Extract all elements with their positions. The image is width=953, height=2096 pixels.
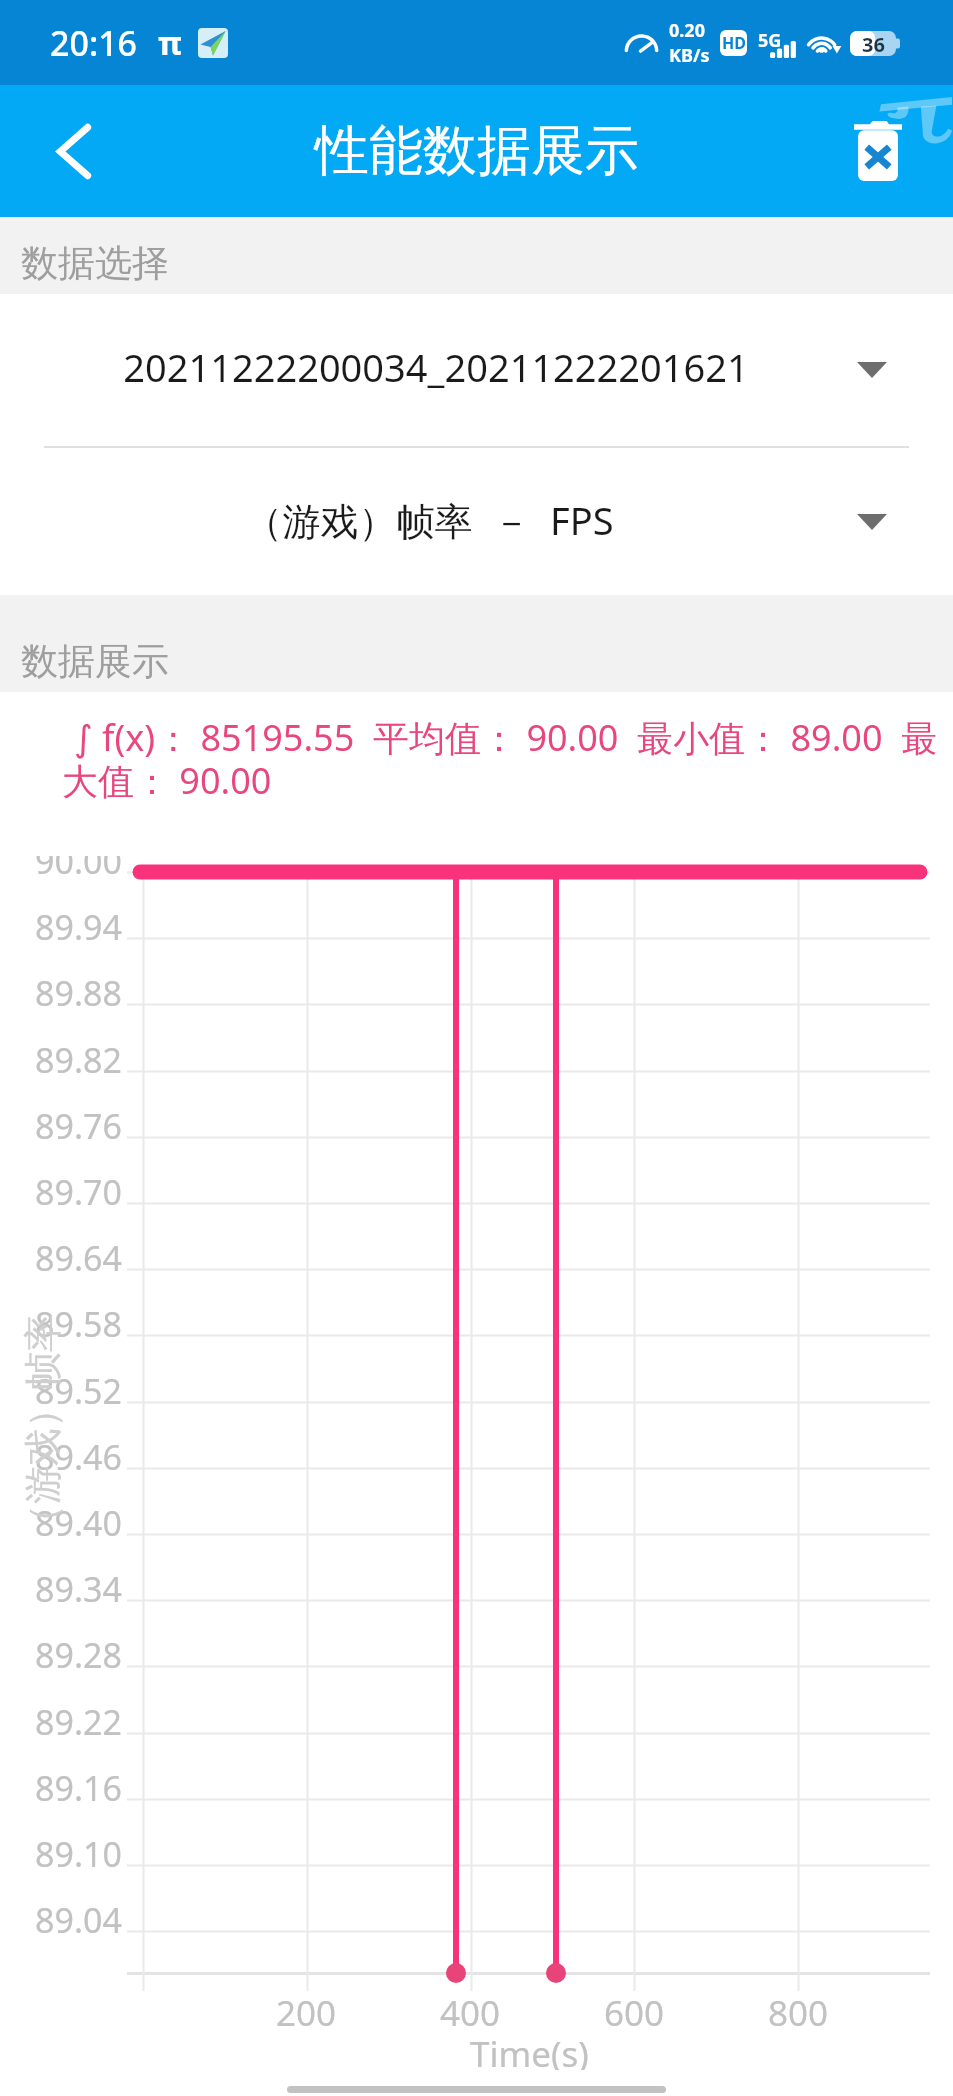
staticText: （游戏）帧率 — [19, 1314, 67, 1542]
staticText: ∫ f(x)： 85195.55 平均值： 90.00 最小值： 89.00 最 — [74, 713, 938, 762]
staticText: 90.00 — [35, 838, 122, 884]
staticText: 89.82 — [35, 1037, 122, 1083]
staticText: KB/s — [669, 43, 710, 68]
staticText: Time(s) — [470, 2030, 589, 2070]
staticText: 89.10 — [35, 1831, 122, 1877]
button[interactable]: 20211222200034_20211222201621 — [0, 294, 953, 446]
staticText: 89.58 — [35, 1301, 122, 1347]
staticText: 20:16 — [50, 20, 138, 66]
staticText: 大值： 90.00 — [62, 756, 272, 805]
staticText: 89.34 — [35, 1566, 122, 1612]
staticText: 89.46 — [35, 1434, 122, 1480]
staticText: 数据选择 — [21, 240, 169, 287]
staticText: 89.04 — [35, 1897, 122, 1943]
button[interactable]: Delete data — [818, 85, 938, 217]
staticText: π — [158, 21, 182, 65]
staticText: 89.64 — [35, 1235, 122, 1281]
staticText: 89.94 — [35, 904, 122, 950]
staticText: 89.40 — [35, 1500, 122, 1546]
button[interactable]: Back — [0, 85, 148, 217]
staticText: 89.28 — [35, 1632, 122, 1678]
staticText: 400 — [440, 1989, 501, 2029]
staticText: HD — [722, 32, 746, 54]
staticText: 89.22 — [35, 1699, 122, 1745]
staticText: 89.16 — [35, 1765, 122, 1811]
staticText: 89.88 — [35, 970, 122, 1016]
staticText: 89.52 — [35, 1368, 122, 1414]
staticText: 200 — [276, 1989, 337, 2029]
staticText: 性能数据展示 — [315, 117, 639, 185]
staticText: 89.70 — [35, 1169, 122, 1215]
staticText: 数据展示 — [21, 638, 169, 685]
staticText: 600 — [604, 1989, 665, 2029]
staticText: （游戏）帧率 － FPS — [244, 494, 614, 546]
staticText: 5G — [758, 28, 782, 53]
staticText: 800 — [768, 1989, 829, 2029]
staticText: 20211222200034_20211222201621 — [123, 341, 749, 393]
staticText: 0.20 — [669, 18, 705, 43]
staticText: 89.76 — [35, 1103, 122, 1149]
staticText: 36 — [862, 31, 885, 56]
button[interactable]: （游戏）帧率 － FPS — [0, 448, 953, 595]
